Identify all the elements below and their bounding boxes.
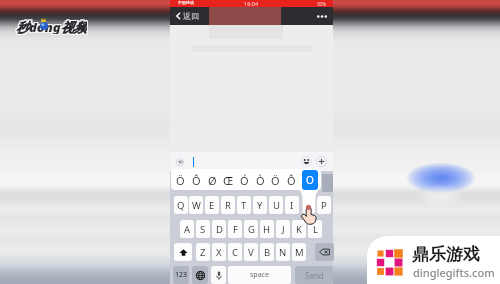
staticText: J: [282, 223, 285, 236]
staticText: Z: [200, 246, 206, 259]
button[interactable]: Send: [295, 266, 333, 284]
staticText: P: [321, 199, 327, 212]
staticText: Y: [257, 199, 263, 212]
staticText: 秒dong视频: [15, 18, 86, 34]
staticText: C: [232, 246, 239, 259]
staticText: 秒dong视频: [17, 19, 88, 35]
staticText: Ø: [208, 173, 217, 188]
button[interactable]: Ô: [189, 169, 203, 191]
button[interactable]: X: [212, 243, 226, 261]
staticText: space: [250, 270, 269, 280]
staticText: 返回: [183, 11, 199, 21]
staticText: Œ: [223, 173, 234, 188]
staticText: 30%: [317, 1, 326, 7]
button[interactable]: U: [269, 196, 283, 214]
staticText: 秒dong视频: [16, 19, 87, 35]
staticText: T: [241, 199, 247, 212]
button[interactable]: D: [212, 220, 226, 238]
button[interactable]: F: [228, 220, 242, 238]
staticText: 鼎乐游戏: [412, 244, 480, 265]
button[interactable]: R: [221, 196, 235, 214]
staticText: 秒dong视频: [15, 17, 86, 33]
staticText: K: [296, 223, 302, 236]
button[interactable]: Emoji: [301, 156, 312, 167]
staticText: G: [248, 223, 255, 236]
button[interactable]: Switch language: [192, 266, 208, 284]
button[interactable]: M: [292, 243, 306, 261]
staticText: 秒dong视频: [16, 18, 87, 34]
button[interactable]: Add attachment: [316, 156, 327, 167]
button[interactable]: Ö: [268, 169, 282, 191]
staticText: H: [263, 223, 271, 236]
staticText: Ô: [287, 173, 296, 188]
staticText: 秒dong视频: [15, 19, 86, 35]
staticText: I: [290, 199, 294, 212]
staticText: U: [273, 199, 280, 212]
button[interactable]: Z: [196, 243, 210, 261]
button[interactable]: Backspace: [315, 243, 334, 261]
staticText: V: [248, 246, 254, 259]
staticText: 中国移动: [178, 0, 194, 5]
button[interactable]: E: [205, 196, 219, 214]
button[interactable]: space: [228, 266, 291, 284]
button[interactable]: Microphone: [211, 266, 226, 284]
staticText: E: [209, 199, 215, 212]
staticText: Ö: [271, 173, 280, 188]
button[interactable]: Ö: [173, 169, 187, 191]
button[interactable]: Ò: [253, 169, 267, 191]
staticText: Ò: [256, 173, 265, 188]
staticText: B: [264, 246, 271, 259]
staticText: 秒dong视频: [17, 17, 88, 33]
button[interactable]: H: [260, 220, 274, 238]
staticText: N: [279, 246, 287, 259]
button[interactable]: V: [244, 243, 258, 261]
staticText: S: [200, 223, 206, 236]
button[interactable]: Œ: [221, 169, 235, 191]
button[interactable]: T: [237, 196, 251, 214]
button[interactable]: 返回: [175, 11, 199, 21]
staticText: D: [216, 223, 223, 236]
button[interactable]: Y: [253, 196, 267, 214]
button[interactable]: N: [276, 243, 290, 261]
button[interactable]: A: [180, 220, 194, 238]
staticText: 秒dong视频: [16, 17, 87, 33]
button[interactable]: G: [244, 220, 258, 238]
staticText: Ó: [240, 173, 249, 188]
staticText: A: [184, 223, 191, 236]
button[interactable]: B: [260, 243, 274, 261]
staticText: dinglegifts.com: [413, 265, 495, 280]
button[interactable]: S: [196, 220, 210, 238]
staticText: R: [225, 199, 231, 212]
button[interactable]: 123: [173, 266, 189, 284]
button[interactable]: More options: [314, 11, 330, 21]
button[interactable]: L: [308, 220, 322, 238]
button[interactable]: K: [292, 220, 306, 238]
button[interactable]: Q: [174, 196, 188, 214]
staticText: Send: [305, 270, 324, 281]
button[interactable]: P: [317, 196, 331, 214]
staticText: X: [216, 246, 222, 259]
button[interactable]: C: [228, 243, 242, 261]
button[interactable]: J: [276, 220, 290, 238]
button[interactable]: Ø: [205, 169, 219, 191]
staticText: 123: [175, 270, 188, 280]
button[interactable]: W: [189, 196, 203, 214]
staticText: Ö: [176, 173, 185, 188]
button[interactable]: O: [302, 170, 318, 190]
staticText: O: [306, 173, 314, 187]
staticText: 16:04: [244, 0, 259, 7]
button[interactable]: Ô: [284, 169, 298, 191]
staticText: F: [233, 223, 238, 236]
button[interactable]: Ó: [237, 169, 251, 191]
button[interactable]: Voice input: [176, 158, 184, 166]
staticText: 秒dong视频: [17, 18, 88, 34]
staticText: Q: [177, 199, 185, 212]
staticText: W: [192, 199, 201, 212]
button[interactable]: Shift: [174, 243, 192, 261]
staticText: L: [313, 223, 318, 236]
staticText: M: [295, 246, 304, 259]
staticText: Ô: [192, 173, 201, 188]
button[interactable]: I: [285, 196, 299, 214]
